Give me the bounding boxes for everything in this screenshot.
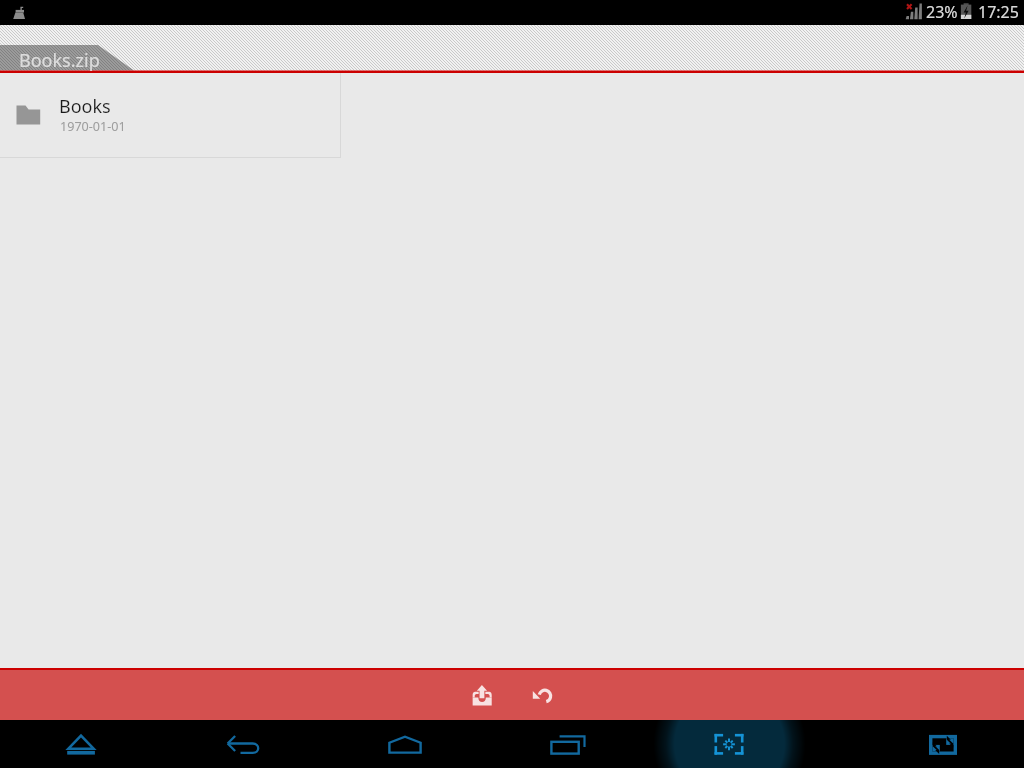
button[interactable]: Home (377, 720, 433, 768)
staticText: Books.zip (19, 48, 100, 73)
staticText: 1970-01-01 (60, 118, 126, 135)
button[interactable]: Back (215, 720, 271, 768)
staticText: Books (59, 94, 111, 119)
button[interactable]: Undo (518, 672, 566, 716)
button[interactable]: Up (53, 720, 109, 768)
button[interactable]: Extract (458, 672, 506, 716)
button[interactable]: Screenshot (701, 720, 757, 768)
staticText: 17:25 (978, 1, 1019, 23)
button[interactable]: Exit full screen (915, 720, 971, 768)
button[interactable]: Recents (540, 720, 596, 768)
button[interactable]: Books (0, 73, 341, 158)
staticText: 23% (926, 1, 958, 23)
